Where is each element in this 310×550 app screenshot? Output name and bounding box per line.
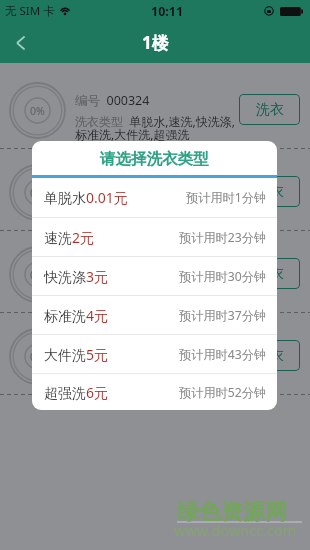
staticText: 请选择洗衣类型 xyxy=(100,149,209,169)
staticText: 洗衣类型 单脱水,速洗,快洗涤,标准洗,大件洗,超强洗 xyxy=(75,359,235,389)
staticText: 预计用时37分钟 xyxy=(179,307,267,324)
staticText: 无 SIM 卡 xyxy=(5,3,55,19)
button[interactable]: 速洗2元 xyxy=(32,218,277,256)
staticText: 洗衣类型 单脱水,速洗,快洗涤,标准洗,大件洗,超强洗 xyxy=(75,277,235,307)
button[interactable]: 大件洗5元 xyxy=(32,335,277,373)
staticText: 编号 000324 xyxy=(75,338,150,355)
staticText: 快洗涤3元 xyxy=(44,267,109,286)
staticText: 预计用时43分钟 xyxy=(179,346,267,363)
button[interactable]: 0% xyxy=(0,149,310,230)
staticText: 洗衣类型 单脱水,速洗,快洗涤,标准洗,大件洗,超强洗 xyxy=(75,113,235,143)
staticText: 预计用时1分钟 xyxy=(186,189,267,206)
button[interactable]: 单脱水0.01元 xyxy=(32,178,277,217)
staticText: 0% xyxy=(30,268,45,282)
button[interactable]: 0% xyxy=(0,67,310,148)
staticText: 速洗2元 xyxy=(44,228,95,247)
staticText: www.downcc.com xyxy=(174,520,297,540)
button[interactable]: 快洗涤3元 xyxy=(32,257,277,295)
button[interactable]: 标准洗4元 xyxy=(32,296,277,334)
button[interactable]: 0% xyxy=(0,231,310,312)
staticText: 洗衣类型 单脱水,速洗,快洗涤,标准洗,大件洗,超强洗 xyxy=(75,195,235,225)
staticText: 单脱水0.01元 xyxy=(44,188,128,207)
staticText: 编号 000324 xyxy=(75,174,150,191)
button[interactable]: 洗衣 xyxy=(239,176,300,207)
button[interactable]: 洗衣 xyxy=(239,258,300,289)
staticText: 标准洗4元 xyxy=(44,306,109,325)
button[interactable]: 洗衣 xyxy=(239,94,300,125)
staticText: 10:11 xyxy=(151,3,184,20)
staticText: 0% xyxy=(30,186,45,200)
staticText: 编号 000324 xyxy=(75,256,150,273)
staticText: 编号 000324 xyxy=(75,92,150,109)
staticText: 绿色资源网 xyxy=(177,498,287,526)
staticText: 洗衣 xyxy=(256,183,284,201)
staticText: 洗衣 xyxy=(256,347,284,365)
button[interactable]: 超强洗6元 xyxy=(32,374,277,410)
staticText: 0% xyxy=(30,104,45,118)
button[interactable]: 洗衣 xyxy=(239,340,300,371)
button[interactable]: 0% xyxy=(0,313,310,394)
staticText: 1楼 xyxy=(142,31,169,54)
staticText: 预计用时30分钟 xyxy=(179,268,267,285)
staticText: 大件洗5元 xyxy=(44,345,109,364)
staticText: 0% xyxy=(30,350,45,364)
staticText: 洗衣 xyxy=(256,101,284,119)
staticText: 预计用时52分钟 xyxy=(179,384,267,401)
staticText: 超强洗6元 xyxy=(44,383,109,402)
staticText: 预计用时23分钟 xyxy=(179,229,267,246)
button[interactable]: Back xyxy=(0,22,41,63)
staticText: 洗衣 xyxy=(256,265,284,283)
